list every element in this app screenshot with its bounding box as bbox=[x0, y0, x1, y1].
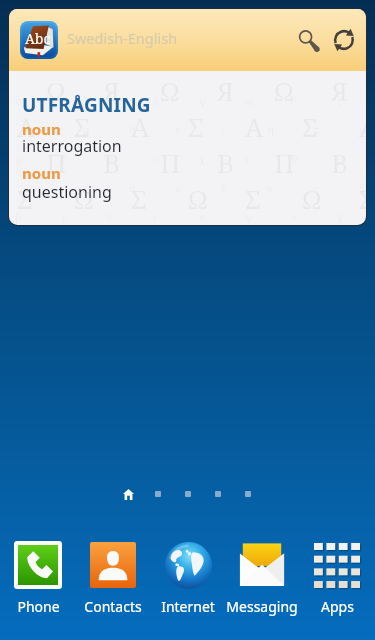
staticText: UTFRÅGNING bbox=[22, 92, 151, 118]
button[interactable]: Abc bbox=[9, 9, 366, 225]
staticText: π bbox=[313, 122, 321, 137]
staticText: ζ bbox=[337, 93, 342, 108]
staticText: Ω bbox=[160, 73, 180, 108]
staticText: Σ bbox=[188, 109, 204, 144]
staticText: ς bbox=[37, 180, 43, 195]
staticText: Я bbox=[103, 73, 121, 108]
staticText: μ bbox=[337, 151, 344, 166]
staticText: A bbox=[245, 109, 264, 144]
staticText: Apps bbox=[321, 597, 354, 616]
staticText: A bbox=[131, 109, 150, 144]
staticText: π bbox=[61, 151, 69, 166]
button[interactable]: Messaging bbox=[225, 541, 299, 616]
staticText: μ bbox=[83, 122, 90, 137]
button[interactable]: Home page bbox=[118, 484, 138, 504]
staticText: Ω bbox=[46, 73, 66, 108]
staticText: Π bbox=[46, 145, 67, 180]
staticText: Я bbox=[217, 73, 235, 108]
staticText: ε bbox=[313, 180, 319, 195]
staticText: Ω bbox=[274, 73, 294, 108]
button[interactable]: Page bbox=[148, 484, 168, 504]
button[interactable]: Search bbox=[290, 18, 326, 62]
button[interactable]: Page bbox=[238, 484, 258, 504]
staticText: Π bbox=[160, 145, 181, 180]
button[interactable]: Phone bbox=[1, 541, 75, 616]
staticText: δ bbox=[37, 122, 44, 137]
staticText: noun bbox=[22, 163, 61, 183]
staticText: Messaging bbox=[226, 597, 298, 616]
staticText: Σ bbox=[74, 109, 90, 144]
staticText: A bbox=[17, 109, 36, 144]
staticText: β bbox=[359, 180, 366, 195]
staticText: ω bbox=[107, 93, 116, 108]
staticText: Σ bbox=[17, 181, 33, 216]
staticText: Contacts bbox=[84, 597, 142, 616]
button[interactable]: Refresh bbox=[326, 18, 362, 62]
staticText: B bbox=[331, 145, 349, 180]
staticText: Ω bbox=[188, 181, 208, 216]
staticText: Swedish-English bbox=[67, 28, 178, 48]
staticText: θ bbox=[129, 122, 136, 137]
button[interactable]: Page bbox=[208, 484, 228, 504]
staticText: Phone bbox=[17, 597, 60, 616]
staticText: Σ bbox=[302, 109, 318, 144]
staticText: ω bbox=[359, 122, 366, 137]
staticText: Π bbox=[274, 145, 295, 180]
staticText: Abc bbox=[25, 29, 51, 48]
staticText: noun bbox=[22, 119, 61, 139]
staticText: Я bbox=[331, 73, 349, 108]
staticText: Internet bbox=[161, 597, 215, 616]
button[interactable]: Internet bbox=[151, 541, 225, 616]
staticText: ο bbox=[129, 180, 136, 195]
staticText: questioning bbox=[22, 181, 112, 203]
staticText: B bbox=[103, 145, 121, 180]
button[interactable]: Apps bbox=[300, 541, 374, 616]
staticText: A bbox=[359, 109, 366, 144]
staticText: Σ bbox=[131, 181, 147, 216]
staticText: Σ bbox=[245, 181, 261, 216]
staticText: interrogation bbox=[22, 135, 122, 157]
staticText: τ bbox=[83, 180, 89, 195]
staticText: ρ bbox=[107, 151, 114, 166]
staticText: B bbox=[217, 145, 235, 180]
staticText: Σ bbox=[359, 181, 366, 216]
staticText: Ω bbox=[74, 181, 94, 216]
button[interactable]: Contacts bbox=[76, 541, 150, 616]
staticText: π bbox=[61, 93, 69, 108]
staticText: Ω bbox=[302, 181, 322, 216]
button[interactable]: Page bbox=[178, 484, 198, 504]
